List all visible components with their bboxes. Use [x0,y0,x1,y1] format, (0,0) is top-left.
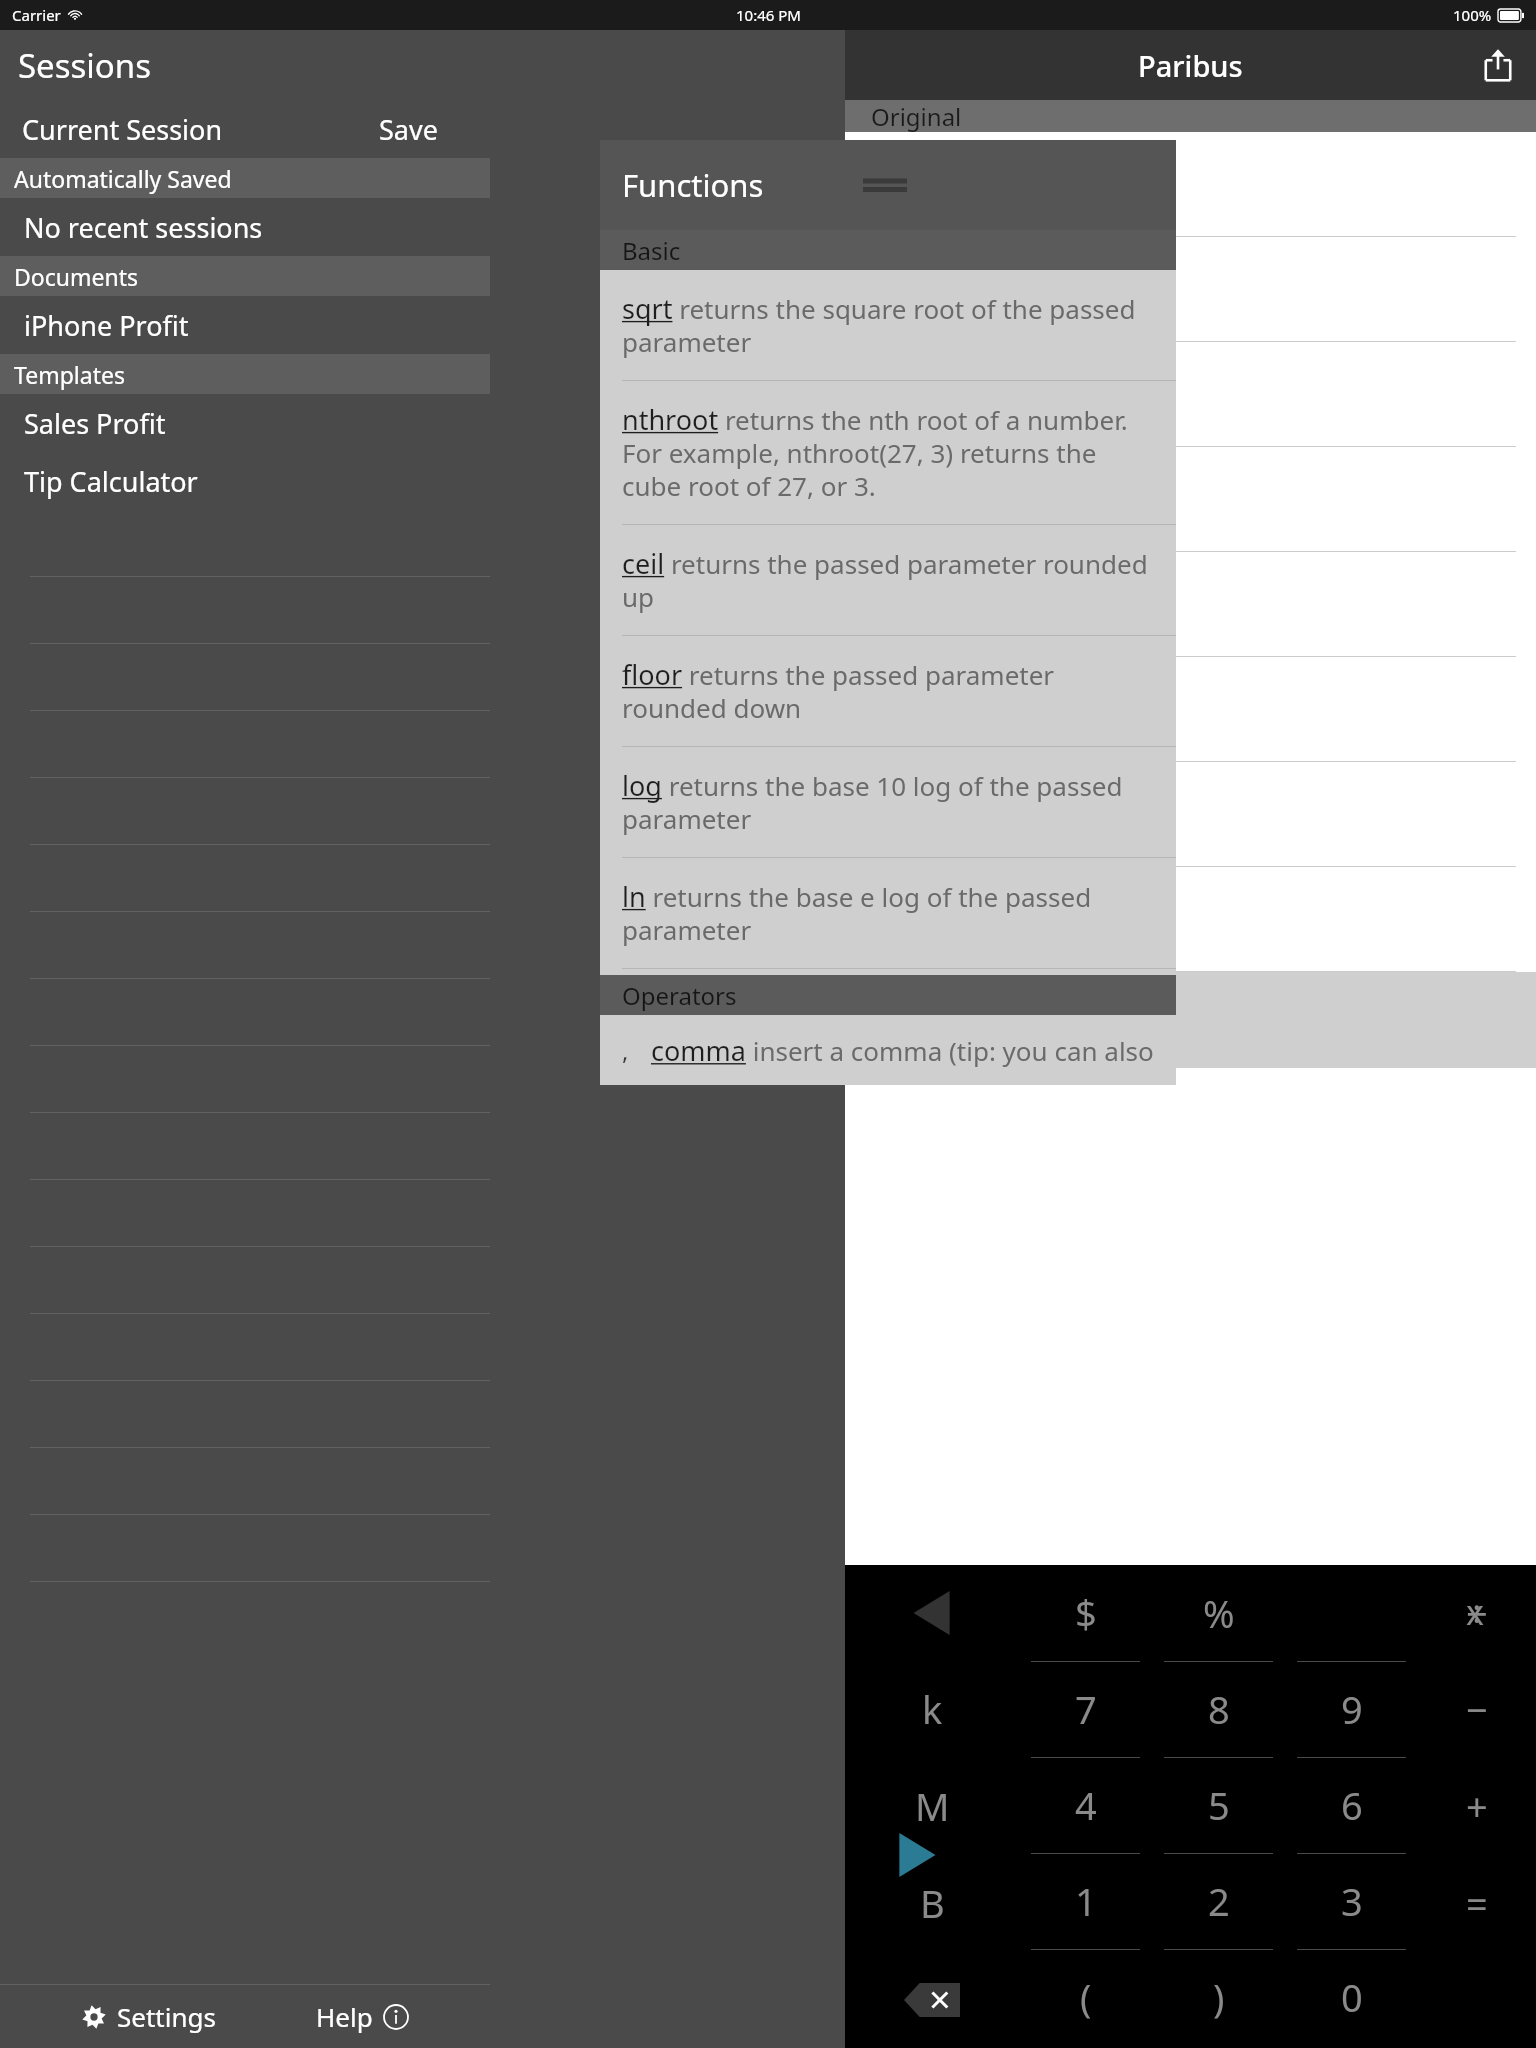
button[interactable]: Current Session [0,100,490,158]
staticText: Basic [622,234,681,267]
staticText: ceil returns the passed parameter rounde… [622,545,1162,615]
staticText: Documents [14,261,138,292]
staticText: nthroot returns the nth root of a number… [622,401,1162,504]
staticText: Carrier [12,5,61,25]
staticText: V8 [875,899,911,940]
staticText: Units [875,269,949,310]
button[interactable]: ceil returns the passed parameter rounde… [600,525,1176,636]
button[interactable]: Multiply [1450,1587,1500,1637]
staticText: Tip Calculator [24,463,198,500]
button[interactable]: $ [1019,1565,1152,1661]
button[interactable]: V8 [845,867,1536,972]
staticText: Price [875,164,945,205]
staticText: k [922,1683,943,1735]
staticText: ÷ [1466,1587,1488,1639]
button[interactable]: + [1418,1757,1536,1854]
staticText: Functions [622,164,764,206]
staticText: − [1466,1683,1488,1735]
staticText: Sales Profit [24,405,166,442]
button[interactable]: M [845,1757,1019,1854]
button[interactable]: V7 [845,762,1536,867]
staticText: Help [316,1999,373,2034]
staticText: 7 [1075,1683,1097,1735]
button[interactable]: B [845,1854,1019,1951]
staticText: % [1203,1587,1235,1639]
staticText: comma insert a comma (tip: you can also … [651,1032,1166,1069]
staticText: Save [379,111,438,148]
button[interactable]: − [1418,1661,1536,1757]
staticText: log returns the base 10 log of the passe… [622,767,1162,837]
button[interactable]: 8 [1152,1661,1285,1757]
button[interactable]: nthroot returns the nth root of a number… [600,381,1176,525]
button[interactable]: ) [1152,1949,1285,2045]
staticText: Gross P [875,374,982,415]
staticText: No recent sessions [24,209,263,246]
staticText: ln returns the base e log of the passed … [622,878,1162,948]
staticText: = [1466,1877,1488,1929]
staticText: B [920,1877,945,1929]
button[interactable]: 1 [1019,1853,1152,1949]
button[interactable]: ln returns the base e log of the passed … [600,858,1176,969]
button[interactable]: 9 [1285,1661,1418,1757]
staticText: ( [1080,1971,1092,2023]
staticText: 6 [1341,1779,1363,1831]
button[interactable]: 7 [1019,1661,1152,1757]
button[interactable]: 5 [1152,1757,1285,1853]
button[interactable]: COGS [845,447,1536,552]
button[interactable]: Gross P [845,342,1536,447]
other: Previous [910,1591,954,1635]
staticText: $ [1075,1587,1097,1639]
button[interactable]: Share [1476,43,1520,87]
button[interactable]: 2 [1152,1853,1285,1949]
button[interactable]: Sales Profit [0,394,490,452]
staticText: 4 [1075,1779,1097,1831]
button[interactable]: % [1152,1565,1285,1661]
staticText: + [1466,1780,1488,1832]
staticText: 100% [1453,5,1492,25]
button[interactable]: floor returns the passed parameter round… [600,636,1176,747]
staticText: Automatically Saved [14,163,232,194]
button[interactable]: No recent sessions [0,198,490,256]
button[interactable]: ( [1019,1949,1152,2045]
button[interactable]: k [845,1661,1019,1757]
staticText: Max [875,1025,925,1059]
button[interactable]: Menu [855,165,915,205]
button[interactable]: log returns the base 10 log of the passe… [600,747,1176,858]
button[interactable]: sqrt returns the square root of the pass… [600,270,1176,381]
button[interactable]: ÷ [1418,1565,1536,1661]
button[interactable]: Delete [845,1951,1019,2048]
staticText: Templates [14,359,125,390]
staticText: Margin [875,689,976,730]
staticText: 5 [1208,1779,1230,1831]
button[interactable]: Play [891,1829,943,1881]
staticText: V7 [875,794,911,835]
staticText: x [1466,1589,1484,1635]
staticText: ) [1213,1971,1225,2023]
button[interactable]: 4 [1019,1757,1152,1853]
staticText: floor returns the passed parameter round… [622,656,1162,726]
button[interactable]: 0 [1285,1949,1418,2045]
button[interactable]: 3 [1285,1853,1418,1949]
button[interactable]: = [1418,1854,1536,1951]
button[interactable]: Units [845,237,1536,342]
button[interactable]: Help [306,1991,419,2042]
button[interactable]: 6 [1285,1757,1418,1853]
staticText: 0 [1341,1971,1363,2023]
button[interactable]: Settings [71,1991,226,2042]
staticText: , [622,1034,629,1067]
button[interactable]: Previous [845,1565,1019,1661]
button[interactable]: Tip Calculator [0,452,490,510]
staticText: 2 [1208,1875,1230,1927]
staticText: iPhone Profit [24,307,189,344]
staticText: Current Session [22,111,223,148]
staticText: Settings [117,1999,216,2034]
button[interactable]: iPhone Profit [0,296,490,354]
button[interactable]: Margin [845,657,1536,762]
button[interactable]: Profit [845,552,1536,657]
staticText: 9 [1341,1683,1363,1735]
button[interactable]: Price [845,132,1536,237]
